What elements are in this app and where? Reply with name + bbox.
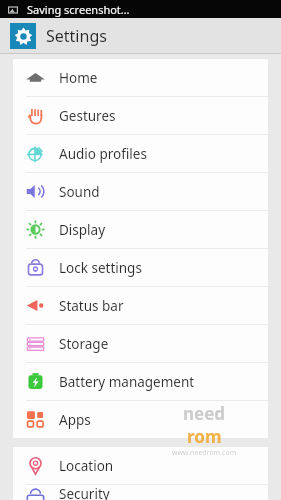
staticText: Home <box>59 69 98 87</box>
button[interactable]: Status bar <box>13 287 268 324</box>
button[interactable]: Apps <box>13 401 268 438</box>
staticText: Lock settings <box>59 259 142 277</box>
staticText: Storage <box>59 335 109 353</box>
button[interactable]: Location <box>13 447 268 484</box>
button[interactable]: Storage <box>13 325 268 362</box>
staticText: Battery management <box>59 373 195 391</box>
button[interactable]: Sound <box>13 173 268 210</box>
button[interactable]: Lock settings <box>13 249 268 286</box>
staticText: rom <box>187 425 222 448</box>
staticText: Settings <box>46 25 107 47</box>
staticText: Status bar <box>59 297 124 315</box>
staticText: Gestures <box>59 107 116 125</box>
staticText: need <box>183 402 226 425</box>
button[interactable]: Settings app icon <box>10 23 36 49</box>
button[interactable]: Security <box>13 485 268 500</box>
button[interactable]: Gestures <box>13 97 268 134</box>
staticText: Location <box>59 457 114 475</box>
staticText: Apps <box>59 411 91 429</box>
button[interactable]: Display <box>13 211 268 248</box>
staticText: Display <box>59 221 106 239</box>
staticText: Saving screenshot… <box>27 2 130 17</box>
button[interactable]: Home <box>13 59 268 96</box>
button[interactable]: Battery management <box>13 363 268 400</box>
staticText: Security <box>59 485 110 500</box>
staticText: www.needrom.com <box>172 448 237 458</box>
button[interactable]: Audio profiles <box>13 135 268 172</box>
staticText: Audio profiles <box>59 145 147 163</box>
staticText: Sound <box>59 183 100 201</box>
